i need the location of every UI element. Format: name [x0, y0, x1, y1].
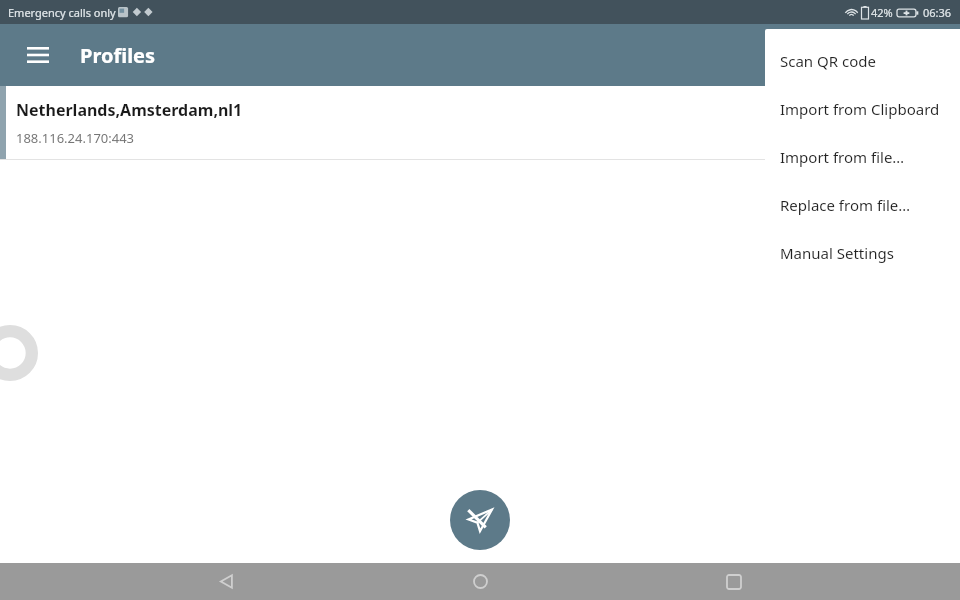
button[interactable]: Disconnect [450, 490, 510, 550]
button[interactable]: Import from Clipboard [765, 85, 960, 133]
staticText: 42% [871, 5, 893, 20]
button[interactable]: Back [198, 563, 254, 600]
staticText: 188.116.24.170:443 [16, 129, 135, 147]
staticText: Profiles [80, 42, 156, 69]
staticText: 06:36 [923, 5, 952, 20]
button[interactable]: Replace from file… [765, 181, 960, 229]
staticText: Scan QR code [780, 51, 876, 71]
button[interactable]: Scan QR code [765, 37, 960, 85]
staticText: Emergency calls only [8, 5, 116, 20]
button[interactable]: Netherlands,Amsterdam,nl1 [0, 86, 960, 160]
staticText: Import from Clipboard [780, 99, 940, 119]
staticText: Import from file… [780, 147, 905, 167]
button[interactable]: Open navigation drawer [18, 35, 58, 75]
button[interactable]: Home [452, 563, 508, 600]
staticText: Replace from file… [780, 195, 911, 215]
button[interactable]: Recent apps [706, 563, 762, 600]
button[interactable]: Manual Settings [765, 229, 960, 277]
staticText: Netherlands,Amsterdam,nl1 [16, 99, 243, 121]
staticText: Manual Settings [780, 243, 894, 263]
button[interactable]: Import from file… [765, 133, 960, 181]
